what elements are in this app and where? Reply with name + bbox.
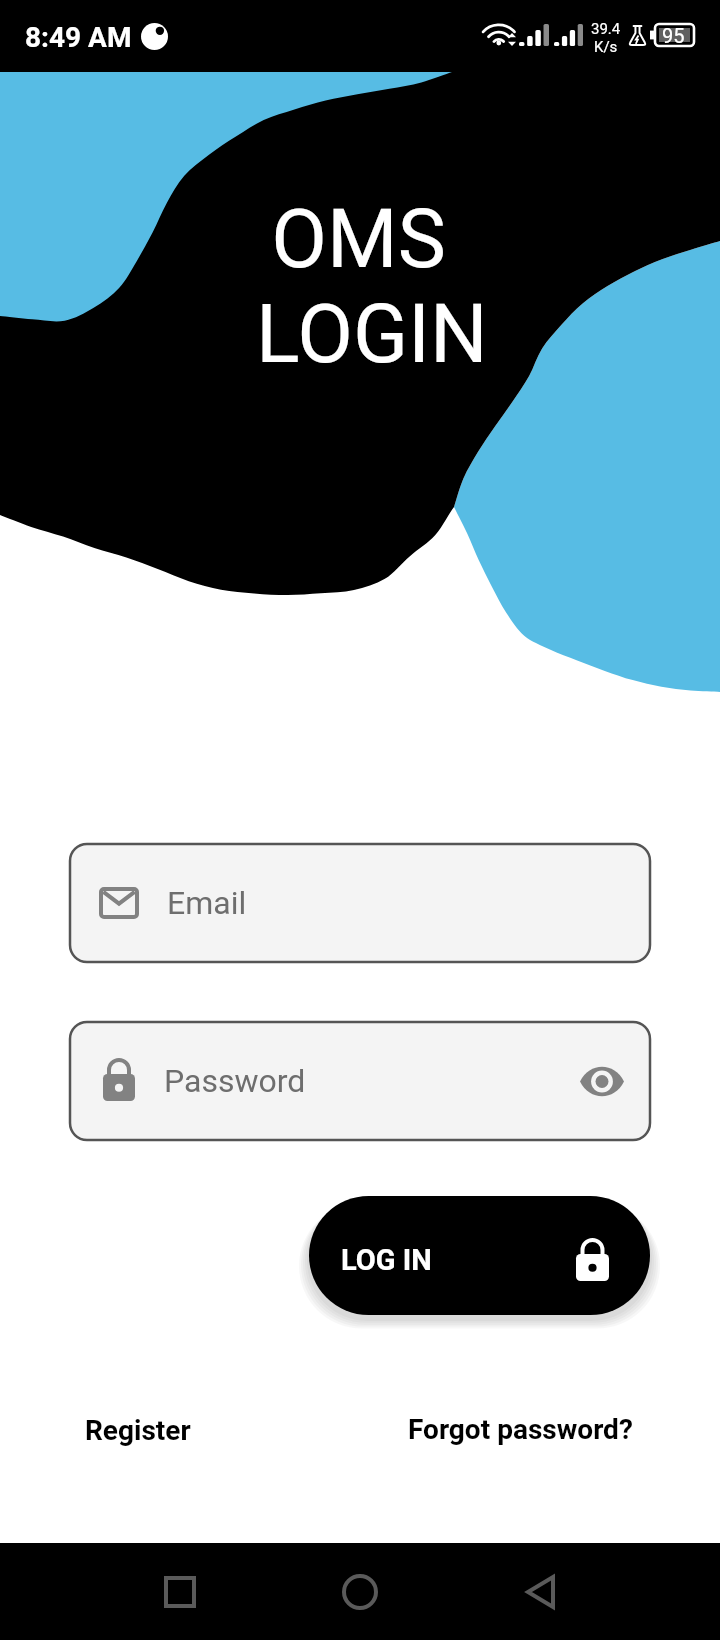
staticText: OMS [271, 192, 446, 287]
button[interactable]: Forgot password? [390, 1401, 651, 1457]
button[interactable]: Back [492, 1544, 588, 1640]
button[interactable]: LOG IN [309, 1196, 650, 1315]
staticText: Password [164, 1062, 306, 1100]
staticText: LOGIN [256, 287, 488, 382]
staticText: 8:49 AM [25, 21, 132, 54]
staticText: Email [167, 884, 247, 922]
staticText: LOG IN [341, 1243, 432, 1277]
staticText: K/s [594, 38, 618, 56]
button[interactable]: Recents [132, 1544, 228, 1640]
staticText: 95 [662, 24, 685, 47]
button[interactable]: Register [67, 1402, 209, 1458]
button[interactable]: Email [70, 844, 650, 962]
staticText: 39.4 [591, 20, 621, 38]
button[interactable]: Home [312, 1544, 408, 1640]
button[interactable]: Password [70, 1022, 650, 1140]
staticText: Forgot password? [408, 1413, 633, 1446]
staticText: Register [85, 1414, 191, 1447]
button[interactable]: Show password [571, 1050, 633, 1112]
